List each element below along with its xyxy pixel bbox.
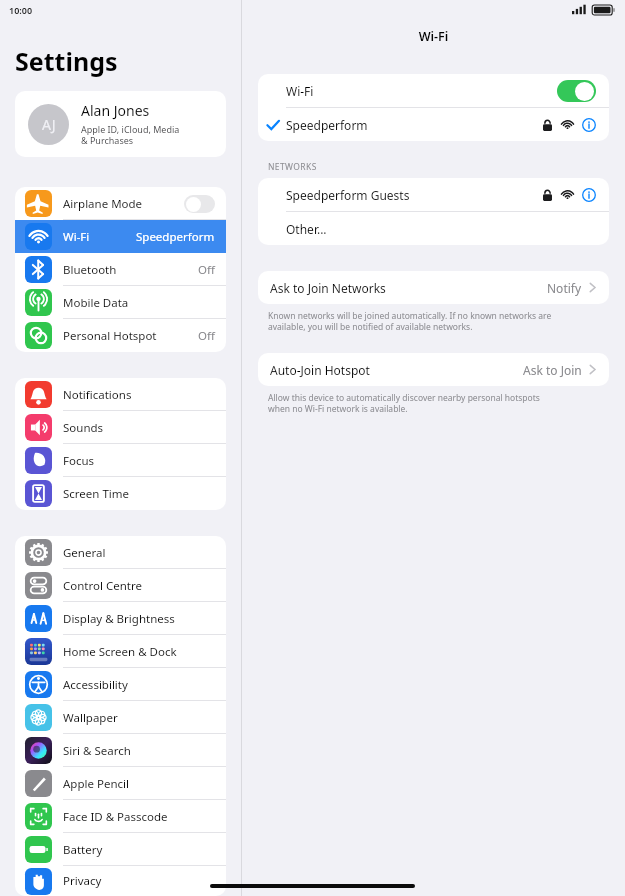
staticText: Apple ID, iCloud, Media & Purchases — [81, 123, 180, 147]
button[interactable]: Bluetooth — [15, 253, 226, 286]
button[interactable]: Battery — [15, 833, 226, 866]
other: Secure network — [543, 189, 552, 201]
button[interactable]: Ask to Join Networks — [258, 271, 609, 304]
button[interactable]: Siri & Search — [15, 734, 226, 767]
button[interactable]: Control Centre — [15, 569, 226, 602]
staticText: Auto-Join Hotspot — [270, 362, 370, 378]
button[interactable]: Home Screen & Dock — [15, 635, 226, 668]
other: Signal strength — [561, 188, 574, 201]
staticText: Off — [198, 262, 215, 278]
staticText: Display & Brightness — [63, 611, 175, 627]
staticText: 10:00 — [9, 4, 33, 16]
staticText: Home Screen & Dock — [63, 644, 177, 660]
staticText: Apple Pencil — [63, 776, 129, 792]
staticText: Battery — [63, 842, 103, 858]
button[interactable]: Face ID & Passcode — [15, 800, 226, 833]
button[interactable]: Switch off — [184, 195, 215, 213]
button[interactable]: Other... — [258, 212, 609, 245]
staticText: Off — [198, 328, 215, 344]
staticText: Wi-Fi — [63, 229, 90, 245]
button[interactable]: Accessibility — [15, 668, 226, 701]
staticText: Speedperform — [136, 229, 215, 245]
button[interactable]: Mobile Data — [15, 286, 226, 319]
other: Signal strength — [561, 118, 574, 131]
staticText: Accessibility — [63, 677, 128, 693]
staticText: Screen Time — [63, 486, 130, 502]
staticText: Known networks will be joined automatica… — [268, 310, 552, 332]
staticText: Ask to Join Networks — [270, 280, 386, 296]
button[interactable]: Wi-Fi — [15, 220, 226, 253]
button[interactable]: AJ — [15, 91, 226, 157]
button[interactable]: Network information — [582, 118, 596, 132]
button[interactable]: Airplane Mode — [15, 187, 226, 220]
button[interactable]: Display & Brightness — [15, 602, 226, 635]
staticText: Wallpaper — [63, 710, 118, 726]
button[interactable]: Personal Hotspot — [15, 319, 226, 352]
button[interactable]: General — [15, 536, 226, 569]
button[interactable]: Notifications — [15, 378, 226, 411]
button[interactable]: Network information — [582, 188, 596, 202]
staticText: Notify — [547, 280, 582, 296]
staticText: Notifications — [63, 387, 132, 403]
staticText: Personal Hotspot — [63, 328, 157, 344]
button[interactable]: Wallpaper — [15, 701, 226, 734]
staticText: General — [63, 545, 106, 561]
button[interactable]: Speedperform — [258, 108, 609, 141]
button[interactable]: Focus — [15, 444, 226, 477]
staticText: Mobile Data — [63, 295, 129, 311]
staticText: Bluetooth — [63, 262, 117, 278]
button[interactable]: Screen Time — [15, 477, 226, 510]
staticText: NETWORKS — [268, 161, 317, 173]
staticText: Privacy — [63, 873, 102, 889]
staticText: Speedperform — [286, 117, 368, 133]
button[interactable]: Apple Pencil — [15, 767, 226, 800]
staticText: Focus — [63, 453, 95, 469]
button[interactable]: Privacy — [15, 866, 226, 896]
staticText: Control Centre — [63, 578, 142, 594]
button[interactable]: Auto-Join Hotspot — [258, 353, 609, 386]
button[interactable]: Switch on — [557, 80, 596, 102]
staticText: Siri & Search — [63, 743, 131, 759]
staticText: Allow this device to automatically disco… — [268, 392, 540, 414]
staticText: Wi-Fi — [286, 83, 314, 99]
staticText: Settings — [15, 44, 118, 78]
staticText: Speedperform Guests — [286, 187, 410, 203]
other: Secure network — [543, 119, 552, 131]
staticText: Other... — [286, 221, 327, 237]
staticText: Wi-Fi — [242, 28, 625, 45]
button[interactable]: Speedperform Guests — [258, 178, 609, 211]
staticText: Alan Jones — [81, 101, 150, 120]
staticText: Ask to Join — [523, 362, 582, 378]
staticText: Face ID & Passcode — [63, 809, 168, 825]
staticText: Sounds — [63, 420, 104, 436]
staticText: Airplane Mode — [63, 196, 143, 212]
button[interactable]: Wi-Fi — [258, 74, 609, 107]
button[interactable]: Sounds — [15, 411, 226, 444]
staticText: AJ — [42, 115, 56, 134]
